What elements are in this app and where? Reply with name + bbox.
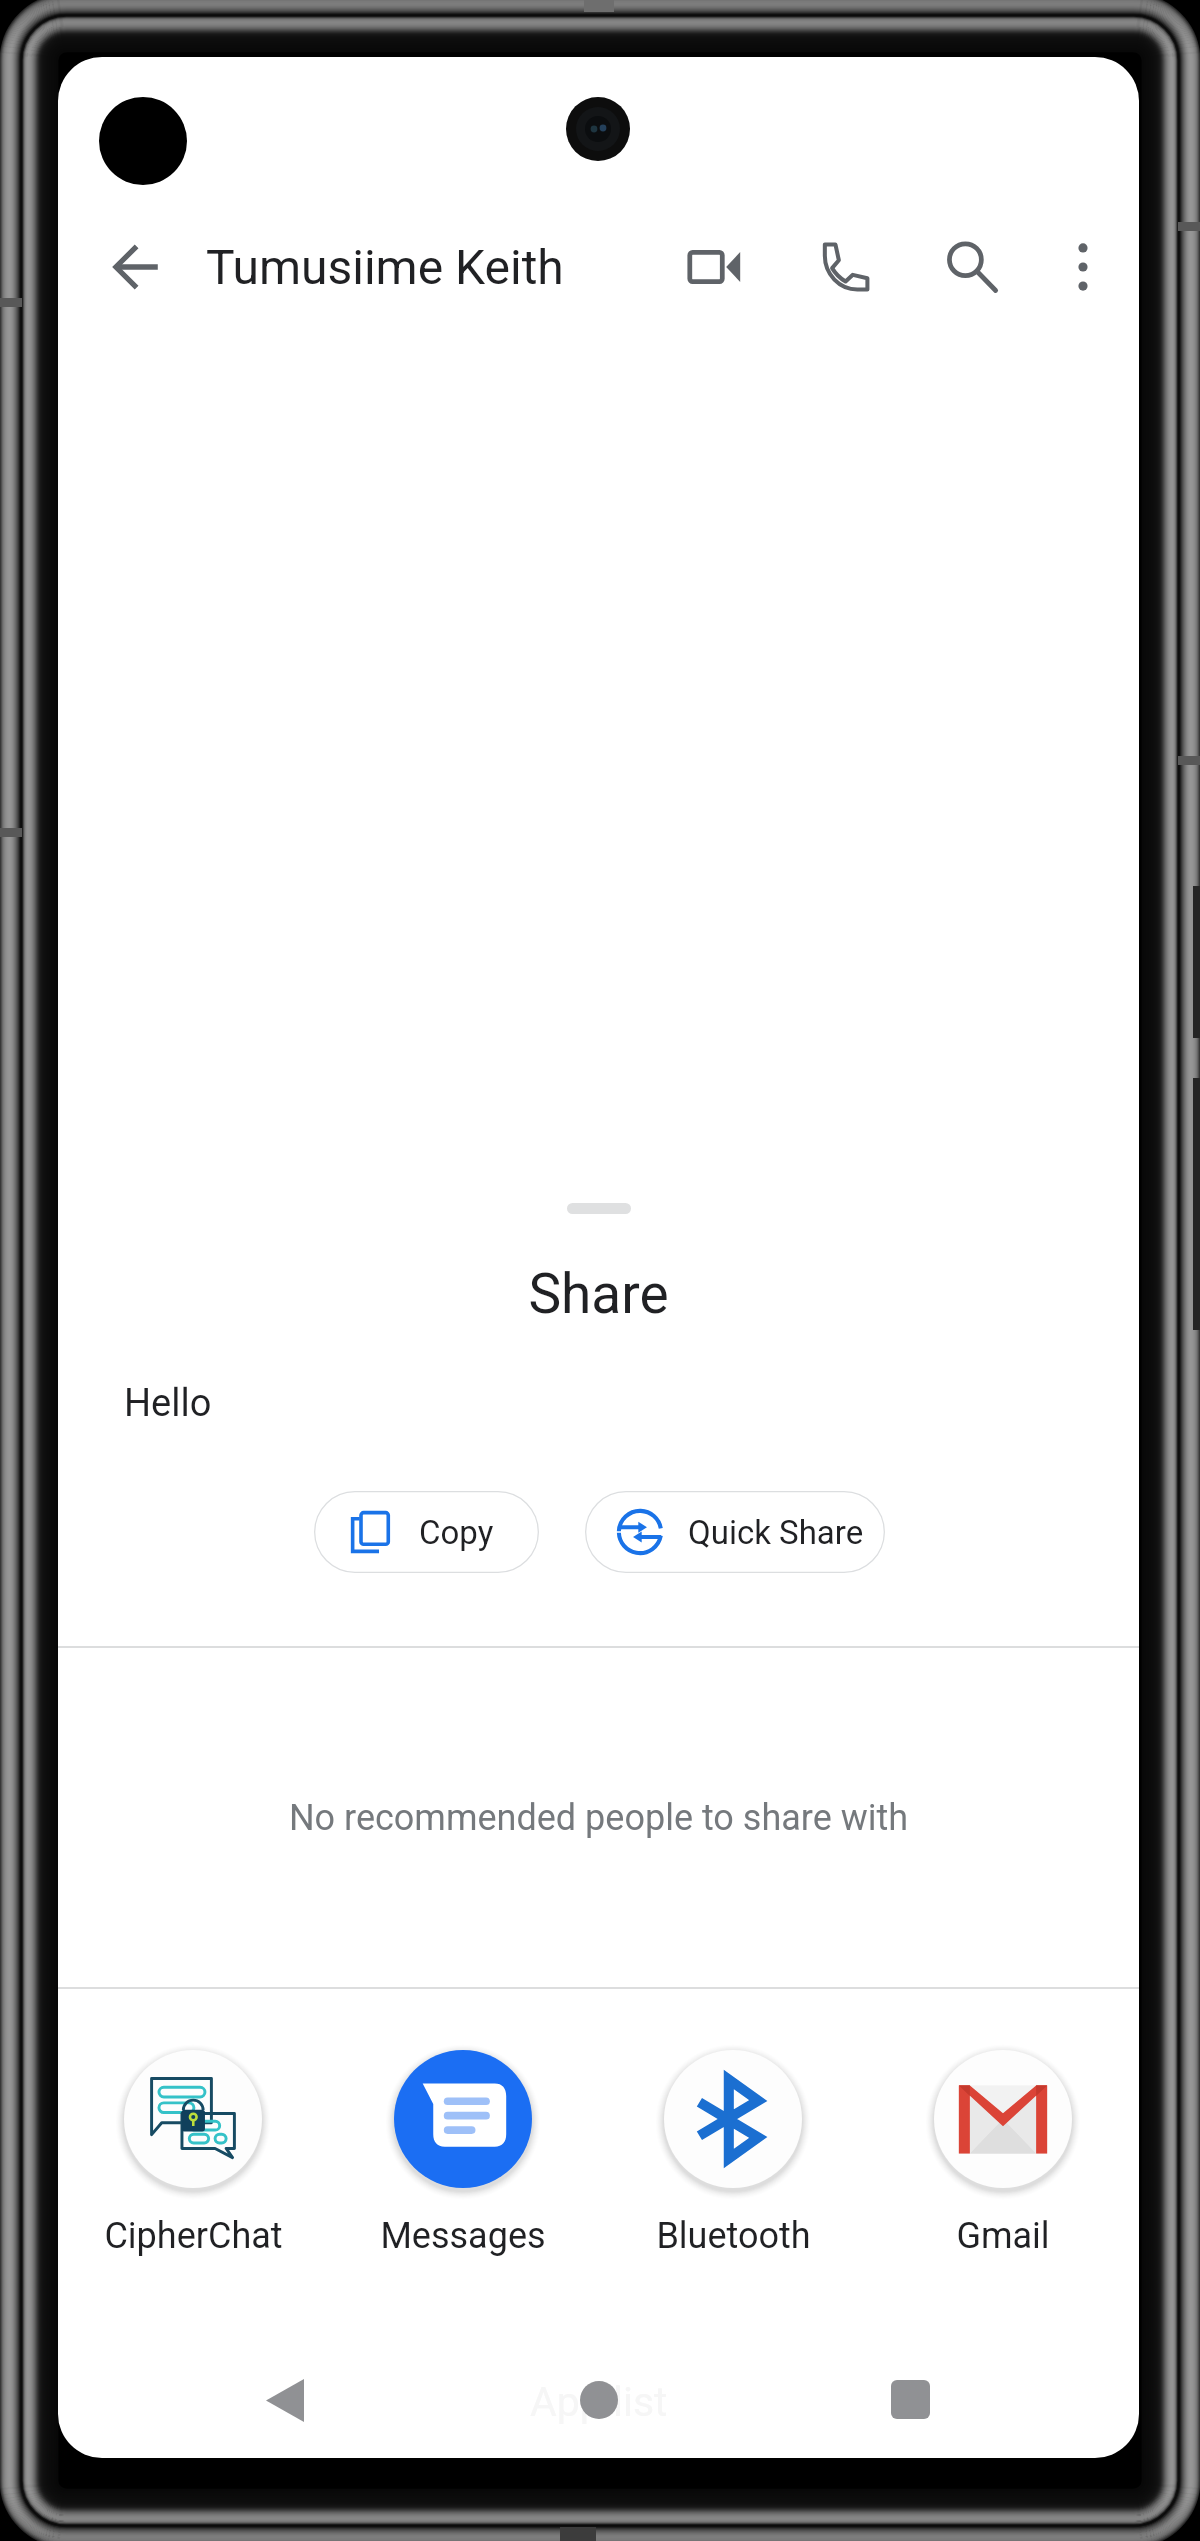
button[interactable]: Home bbox=[544, 2345, 654, 2455]
button[interactable]: Bluetooth bbox=[598, 2043, 868, 2257]
button[interactable]: Gmail bbox=[868, 2043, 1138, 2257]
staticText: Quick Share bbox=[688, 1513, 864, 1552]
staticText: Copy bbox=[419, 1513, 494, 1552]
button[interactable]: More options bbox=[1027, 211, 1139, 323]
staticText: Tumusiime Keith bbox=[206, 239, 564, 295]
button[interactable]: Call bbox=[789, 211, 901, 323]
staticText: CipherChat bbox=[104, 2215, 283, 2257]
button[interactable]: Recent apps bbox=[855, 2344, 965, 2454]
staticText: No recommended people to share with bbox=[58, 1797, 1139, 1839]
button[interactable]: Back bbox=[230, 2345, 340, 2455]
button[interactable]: Back bbox=[84, 213, 192, 321]
staticText: Bluetooth bbox=[656, 2215, 811, 2257]
staticText: Share bbox=[58, 1262, 1139, 1326]
button[interactable]: Copy bbox=[314, 1491, 539, 1573]
button[interactable]: Video call bbox=[659, 211, 771, 323]
button[interactable]: CipherChat bbox=[58, 2043, 328, 2257]
staticText: Messages bbox=[380, 2215, 546, 2257]
staticText: Hello bbox=[124, 1381, 212, 1426]
staticText: Gmail bbox=[956, 2215, 1050, 2257]
button[interactable]: Messages bbox=[328, 2043, 598, 2257]
staticText: App list bbox=[530, 2378, 668, 2426]
button[interactable]: Quick Share bbox=[585, 1491, 885, 1573]
button[interactable]: Search bbox=[915, 211, 1027, 323]
